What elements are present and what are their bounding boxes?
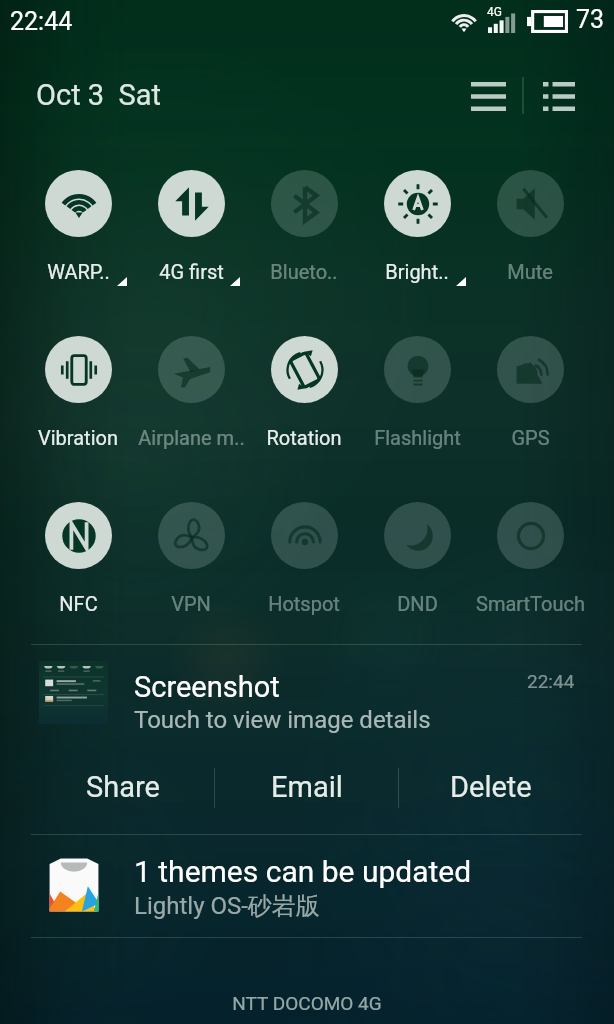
- button[interactable]: Share: [31, 752, 214, 824]
- button[interactable]: 4G first: [130, 164, 252, 285]
- button[interactable]: Screenshot: [0, 645, 614, 737]
- staticText: 73: [576, 5, 605, 34]
- button[interactable]: Airplane m..: [130, 330, 252, 451]
- button[interactable]: VPN: [130, 496, 252, 617]
- button[interactable]: Notifications: [520, 70, 598, 122]
- staticText: GPS: [511, 426, 550, 449]
- button[interactable]: NFC: [17, 496, 139, 617]
- button[interactable]: Vibration: [17, 330, 139, 451]
- button[interactable]: WARP..: [17, 164, 139, 285]
- staticText: VPN: [171, 592, 211, 615]
- button[interactable]: SmartTouch: [469, 496, 591, 617]
- staticText: 1 themes can be updated: [134, 854, 472, 889]
- staticText: Airplane m..: [138, 426, 245, 449]
- button[interactable]: Bright..: [356, 164, 478, 285]
- button[interactable]: 1 themes can be updated: [0, 835, 614, 937]
- staticText: NTT DOCOMO 4G: [0, 992, 614, 1014]
- staticText: Blueto..: [270, 260, 338, 283]
- staticText: DND: [397, 592, 438, 615]
- staticText: Flashlight: [374, 426, 461, 449]
- staticText: Email: [271, 770, 343, 804]
- staticText: Hotspot: [268, 592, 340, 615]
- staticText: Lightly OS-砂岩版: [134, 891, 320, 921]
- staticText: Rotation: [266, 426, 342, 449]
- staticText: NFC: [59, 592, 98, 615]
- staticText: Share: [86, 770, 160, 804]
- button[interactable]: Blueto..: [243, 164, 365, 285]
- button[interactable]: Rotation: [243, 330, 365, 451]
- button[interactable]: Delete: [399, 752, 582, 824]
- button[interactable]: Quick settings: [449, 70, 527, 122]
- button[interactable]: GPS: [469, 330, 591, 451]
- staticText: Vibration: [38, 426, 118, 449]
- button[interactable]: Email: [215, 752, 398, 824]
- button[interactable]: Mute: [469, 164, 591, 285]
- button[interactable]: DND: [356, 496, 478, 617]
- button[interactable]: Flashlight: [356, 330, 478, 451]
- staticText: Bright..: [385, 260, 449, 283]
- button[interactable]: Hotspot: [243, 496, 365, 617]
- staticText: 4G: [487, 5, 502, 19]
- staticText: Oct 3 Sat: [36, 78, 161, 112]
- staticText: Mute: [507, 260, 553, 283]
- staticText: 22:44: [527, 670, 575, 692]
- staticText: 22:44: [10, 7, 73, 36]
- staticText: WARP..: [47, 260, 110, 283]
- staticText: Screenshot: [134, 670, 280, 704]
- staticText: 4G first: [159, 260, 224, 283]
- staticText: Delete: [450, 770, 532, 804]
- staticText: SmartTouch: [476, 592, 585, 615]
- staticText: Touch to view image details: [134, 706, 431, 734]
